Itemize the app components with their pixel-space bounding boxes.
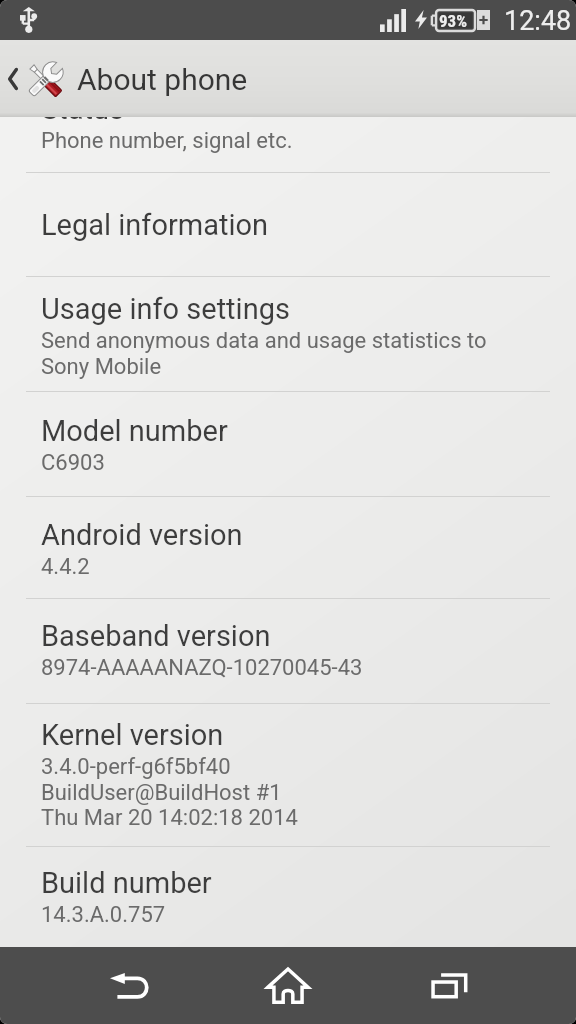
staticText: 14.3.A.0.757 — [41, 902, 166, 928]
button[interactable]: Baseband version — [0, 599, 576, 703]
staticText: About phone — [77, 62, 248, 97]
staticText: C6903 — [41, 450, 105, 476]
staticText: 12:48 — [504, 5, 572, 37]
button[interactable]: Legal information — [0, 173, 576, 276]
staticText: 93% — [439, 11, 468, 31]
staticText: Model number — [41, 414, 228, 448]
button[interactable]: Kernel version — [0, 704, 576, 846]
button[interactable]: Home — [208, 947, 368, 1024]
staticText: Baseband version — [41, 619, 271, 653]
staticText: Android version — [41, 518, 243, 552]
button[interactable]: Recent apps — [368, 947, 528, 1024]
button[interactable]: Status — [0, 117, 576, 172]
staticText: Build number — [41, 866, 212, 900]
staticText: 8974-AAAAANAZQ-10270045-43 — [41, 655, 363, 681]
staticText: Usage info settings — [41, 292, 290, 326]
staticText: Kernel version — [41, 718, 224, 752]
button[interactable]: Back — [48, 947, 208, 1024]
staticText: 3.4.0-perf-g6f5bf40 BuildUser@BuildHost … — [41, 754, 298, 830]
button[interactable]: Android version — [0, 497, 576, 598]
staticText: Status — [41, 117, 124, 126]
staticText: 4.4.2 — [41, 554, 90, 580]
button[interactable]: Model number — [0, 392, 576, 496]
button[interactable]: Usage info settings — [0, 277, 576, 391]
staticText: Phone number, signal etc. — [41, 128, 293, 154]
button[interactable]: About phone — [0, 40, 576, 117]
staticText: Send anonymous data and usage statistics… — [41, 328, 487, 379]
button[interactable]: Build number — [0, 847, 576, 947]
staticText: Legal information — [41, 208, 269, 242]
